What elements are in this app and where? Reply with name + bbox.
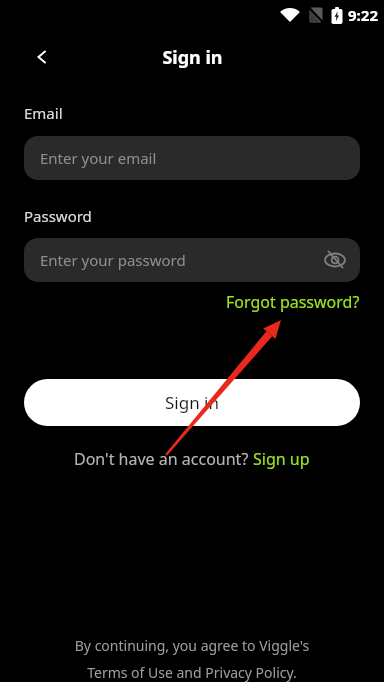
staticText: Enter your password xyxy=(40,250,186,270)
button[interactable]: Enter your email xyxy=(24,136,360,180)
button[interactable]: Sign up xyxy=(253,448,310,470)
staticText: Email xyxy=(24,103,63,123)
staticText: 9:22 xyxy=(348,5,378,25)
button[interactable]: Enter your password xyxy=(24,238,360,282)
staticText: Sign in xyxy=(165,391,219,414)
staticText: Terms of Use and Privacy Policy. xyxy=(0,663,384,682)
button[interactable] xyxy=(28,43,56,71)
staticText: Enter your email xyxy=(40,148,157,168)
staticText: By continuing, you agree to Viggle's xyxy=(0,636,384,655)
button[interactable]: Sign in xyxy=(24,379,360,426)
button[interactable]: Forgot password? xyxy=(226,291,360,313)
staticText: Sign in xyxy=(162,45,223,70)
staticText: Don't have an account? xyxy=(74,448,253,470)
staticText: Sign up xyxy=(253,448,310,470)
staticText: Password xyxy=(24,206,92,226)
staticText: Forgot password? xyxy=(226,291,360,313)
